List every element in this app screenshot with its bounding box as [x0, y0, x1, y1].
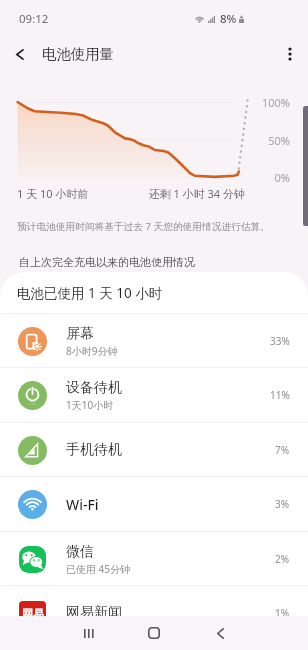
button[interactable]: 网易: [0, 586, 308, 640]
staticText: 09:12: [19, 11, 49, 27]
staticText: Wi-Fi: [66, 495, 99, 514]
staticText: 1天10小时: [66, 398, 114, 412]
staticText: 7%: [275, 443, 290, 457]
staticText: 8%: [220, 11, 237, 27]
button[interactable]: 手机待机: [0, 423, 308, 477]
staticText: 2%: [275, 552, 290, 566]
staticText: 50%: [248, 133, 290, 148]
button[interactable]: 微信: [0, 532, 308, 586]
staticText: 1%: [275, 606, 290, 620]
button[interactable]: Wi-Fi: [0, 477, 308, 531]
staticText: 11%: [270, 388, 290, 402]
button[interactable]: Back: [1, 36, 37, 72]
staticText: 预计电池使用时间将基于过去 7 天您的使用情况进行估算。: [17, 220, 270, 233]
button[interactable]: 屏幕: [0, 314, 308, 368]
staticText: 电池使用量: [42, 45, 114, 63]
button[interactable]: Home: [137, 616, 171, 650]
staticText: 微信: [66, 543, 94, 561]
staticText: 网易新闻: [66, 604, 122, 622]
staticText: 手机待机: [66, 441, 122, 459]
staticText: 8小时9分钟: [66, 344, 118, 358]
button[interactable]: More options: [272, 36, 308, 72]
staticText: 1 天 10 小时前: [17, 186, 89, 201]
staticText: 0%: [248, 170, 290, 185]
staticText: 电池已使用 1 天 10 小时: [17, 284, 163, 302]
staticText: 屏幕: [66, 325, 94, 343]
button[interactable]: 设备待机: [0, 368, 308, 422]
staticText: 已使用 45分钟: [66, 562, 131, 576]
staticText: 设备待机: [66, 379, 122, 397]
staticText: 33%: [270, 334, 290, 348]
staticText: 网易: [22, 607, 44, 621]
staticText: 100%: [248, 95, 290, 110]
staticText: 自上次完全充电以来的电池使用情况: [19, 255, 195, 269]
button[interactable]: Recent apps: [72, 616, 106, 650]
staticText: 3%: [275, 497, 290, 511]
button[interactable]: Back: [203, 616, 237, 650]
staticText: 还剩 1 小时 34 分钟: [140, 186, 245, 201]
